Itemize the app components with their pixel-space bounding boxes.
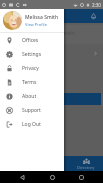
staticText: Directory [9, 11, 40, 21]
button[interactable]: Settings [0, 47, 64, 61]
staticText: Log Out [22, 121, 41, 128]
button[interactable]: About [0, 89, 64, 103]
staticText: Terms [22, 79, 37, 86]
button[interactable]: Notifications [88, 11, 99, 22]
button[interactable]: Terms [0, 75, 64, 89]
button[interactable]: Log Out [0, 117, 64, 131]
staticText: Privacy [22, 65, 39, 72]
staticText: Settings [22, 51, 42, 58]
staticText: 2:30 [92, 2, 101, 8]
button[interactable]: Privacy [0, 61, 64, 75]
button[interactable]: Offices [0, 33, 64, 47]
button[interactable]: View Profile [25, 22, 47, 27]
staticText: Melissa Smith [25, 14, 59, 21]
button[interactable]: Support [0, 103, 64, 117]
button[interactable]: Melissa Smith [0, 25, 103, 44]
button[interactable]: Back [15, 171, 29, 183]
staticText: Offices [22, 37, 39, 44]
button[interactable]: Recents [74, 171, 88, 183]
button[interactable] [2, 93, 101, 105]
staticText: Melissa Smith [36, 29, 75, 37]
button[interactable]: Directory [69, 156, 103, 171]
button[interactable]: Home [45, 171, 59, 183]
staticText: Directory [77, 165, 95, 170]
button[interactable] [0, 44, 103, 62]
button[interactable]: Profile [35, 156, 69, 171]
staticText: Support [22, 107, 41, 114]
staticText: About [22, 93, 37, 100]
